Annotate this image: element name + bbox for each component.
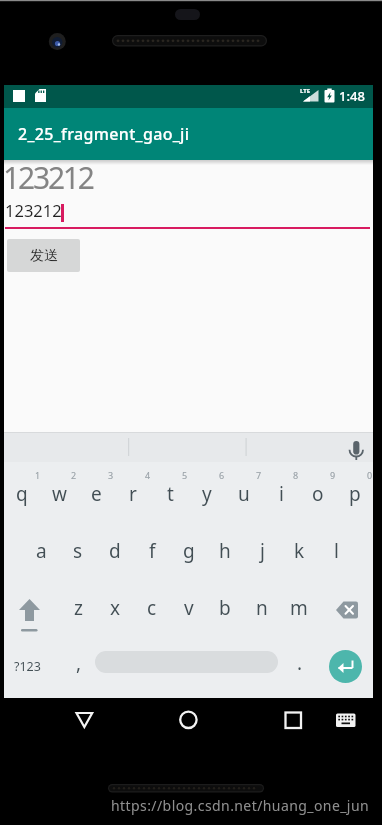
button[interactable] xyxy=(270,700,315,740)
staticText: n xyxy=(256,595,268,621)
button[interactable]: 发送 xyxy=(7,239,80,272)
staticText: t xyxy=(167,481,174,507)
staticText: m xyxy=(290,595,308,621)
button[interactable]: z xyxy=(60,588,96,628)
button[interactable]: b xyxy=(207,588,243,628)
staticText: , xyxy=(76,650,82,676)
staticText: p xyxy=(349,481,361,507)
staticText: LTE xyxy=(300,87,311,95)
staticText: 5 xyxy=(182,469,188,481)
staticText: 2_25_fragment_gao_ji xyxy=(18,123,190,145)
staticText: 7 xyxy=(256,469,262,481)
staticText: 6 xyxy=(219,469,225,481)
button[interactable]: r xyxy=(115,474,151,514)
staticText: 9 xyxy=(330,469,336,481)
staticText: r xyxy=(129,481,137,507)
staticText: 1 xyxy=(35,469,41,481)
staticText: 0 xyxy=(367,469,373,481)
button[interactable]: y xyxy=(189,474,225,514)
button[interactable]: s xyxy=(60,531,96,571)
button[interactable] xyxy=(329,650,362,683)
staticText: k xyxy=(294,538,305,564)
button[interactable]: u xyxy=(226,474,262,514)
button[interactable] xyxy=(325,700,367,740)
button[interactable]: g xyxy=(171,531,207,571)
staticText: ?123 xyxy=(14,658,41,675)
staticText: w xyxy=(52,481,67,507)
staticText: v xyxy=(184,595,194,621)
staticText: u xyxy=(238,481,250,507)
staticText: 4 xyxy=(145,469,151,481)
button[interactable]: j xyxy=(244,531,280,571)
button[interactable] xyxy=(327,590,369,635)
button[interactable]: f xyxy=(134,531,170,571)
button[interactable]: v xyxy=(171,588,207,628)
staticText: 1:48 xyxy=(339,87,365,105)
staticText: z xyxy=(74,595,83,621)
button[interactable] xyxy=(166,700,211,740)
staticText: i xyxy=(279,481,284,507)
staticText: 发送 xyxy=(30,247,58,265)
button[interactable]: p xyxy=(337,474,373,514)
button[interactable]: , xyxy=(64,643,94,683)
staticText: h xyxy=(219,538,231,564)
staticText: l xyxy=(334,538,339,564)
staticText: 123212 xyxy=(5,199,62,221)
button[interactable]: o xyxy=(300,474,336,514)
staticText: f xyxy=(149,538,156,564)
button[interactable] xyxy=(10,590,50,635)
staticText: c xyxy=(147,595,157,621)
staticText: 2 xyxy=(71,469,77,481)
button[interactable]: x xyxy=(97,588,133,628)
staticText: j xyxy=(260,538,265,564)
button[interactable]: t xyxy=(152,474,188,514)
button[interactable]: . xyxy=(285,643,315,683)
staticText: a xyxy=(36,538,47,564)
button[interactable] xyxy=(62,700,107,740)
button[interactable]: n xyxy=(244,588,280,628)
button[interactable]: w xyxy=(41,474,77,514)
staticText: d xyxy=(109,538,121,564)
button[interactable]: e xyxy=(78,474,114,514)
staticText: 3 xyxy=(108,469,114,481)
staticText: o xyxy=(312,481,324,507)
button[interactable]: ?123 xyxy=(5,646,49,686)
staticText: x xyxy=(110,595,121,621)
staticText: 123212 xyxy=(3,157,93,198)
staticText: q xyxy=(16,481,28,507)
staticText: g xyxy=(183,538,195,564)
button[interactable]: q xyxy=(4,474,40,514)
staticText: s xyxy=(73,538,83,564)
button[interactable]: d xyxy=(97,531,133,571)
staticText: y xyxy=(202,481,212,507)
button[interactable]: c xyxy=(134,588,170,628)
staticText: 8 xyxy=(293,469,299,481)
staticText: b xyxy=(219,595,231,621)
button[interactable]: l xyxy=(318,531,354,571)
staticText: e xyxy=(91,481,102,507)
button[interactable]: a xyxy=(23,531,59,571)
staticText: . xyxy=(297,650,303,676)
button[interactable]: i xyxy=(263,474,299,514)
button[interactable]: k xyxy=(281,531,317,571)
button[interactable]: m xyxy=(281,588,317,628)
staticText: https://blog.csdn.net/huang_one_jun xyxy=(111,796,370,815)
button[interactable]: h xyxy=(207,531,243,571)
